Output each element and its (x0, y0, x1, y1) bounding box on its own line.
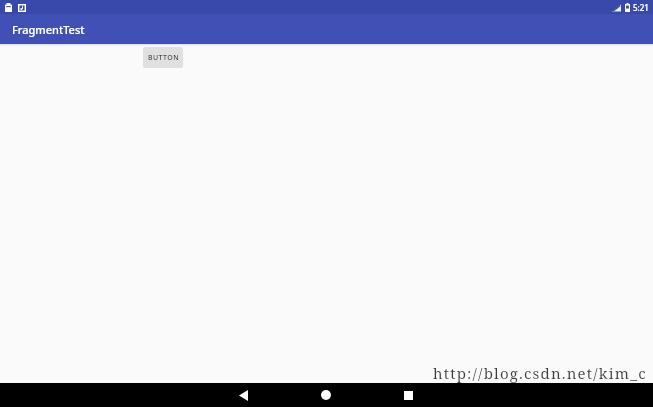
staticText: FragmentTest (12, 22, 85, 37)
button[interactable]: Recent apps (396, 383, 420, 407)
staticText: http://blog.csdn.net/kim_c (433, 363, 647, 383)
staticText: BUTTON (148, 53, 179, 63)
button[interactable]: Home (314, 383, 338, 407)
button[interactable]: Back (231, 383, 255, 407)
button[interactable]: BUTTON (143, 47, 183, 68)
staticText: 5:21 (633, 2, 649, 13)
